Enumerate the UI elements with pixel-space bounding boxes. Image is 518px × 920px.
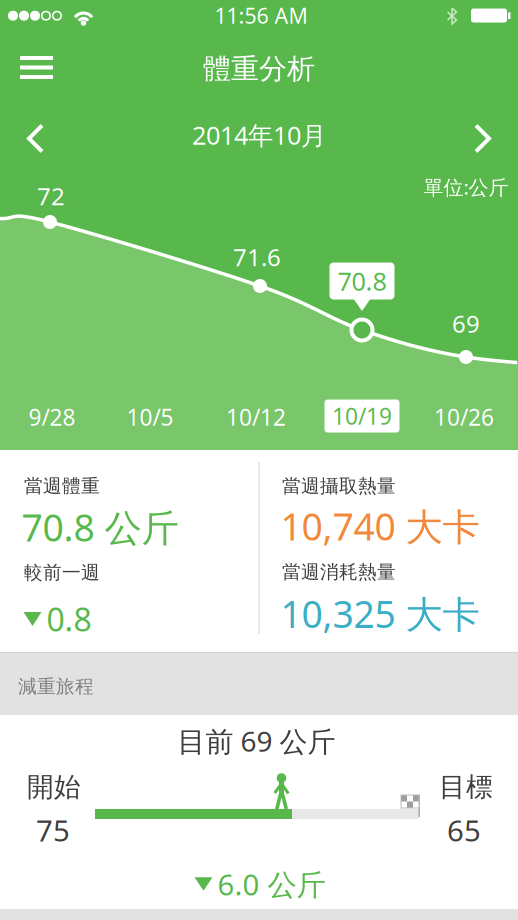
staticText: 10/12: [226, 402, 286, 432]
staticText: 9/28: [28, 402, 75, 432]
staticText: 10,325 大卡: [280, 589, 479, 638]
staticText: 當週體重: [24, 474, 100, 497]
staticText: 較前一週: [24, 561, 100, 584]
staticText: 當週消耗熱量: [282, 560, 396, 583]
button[interactable]: [20, 56, 53, 79]
staticText: 體重分析: [203, 52, 315, 86]
staticText: 10,740 大卡: [280, 501, 479, 551]
staticText: 65: [447, 810, 481, 849]
staticText: 70.8 公斤: [21, 502, 178, 552]
staticText: 目標: [439, 771, 493, 803]
staticText: 單位:公斤: [423, 174, 508, 200]
staticText: 6.0 公斤: [217, 864, 325, 903]
staticText: 10/26: [434, 402, 494, 432]
staticText: 10/5: [126, 402, 173, 432]
staticText: 69: [452, 308, 480, 339]
staticText: 開始: [27, 771, 81, 803]
button[interactable]: [474, 125, 490, 151]
staticText: 10/19: [332, 401, 392, 431]
staticText: 0.8: [46, 598, 91, 640]
staticText: 2014年10月: [192, 118, 326, 152]
staticText: 11:56 AM: [214, 1, 307, 30]
staticText: 70.8: [337, 264, 386, 298]
staticText: 目前 69 公斤: [177, 722, 335, 760]
staticText: 71.6: [233, 241, 281, 273]
staticText: 當週攝取熱量: [282, 474, 396, 497]
staticText: 72: [37, 180, 65, 212]
staticText: 75: [36, 810, 70, 849]
button[interactable]: 10/19: [324, 399, 399, 432]
button[interactable]: [28, 125, 44, 151]
staticText: 減重旅程: [18, 675, 94, 698]
